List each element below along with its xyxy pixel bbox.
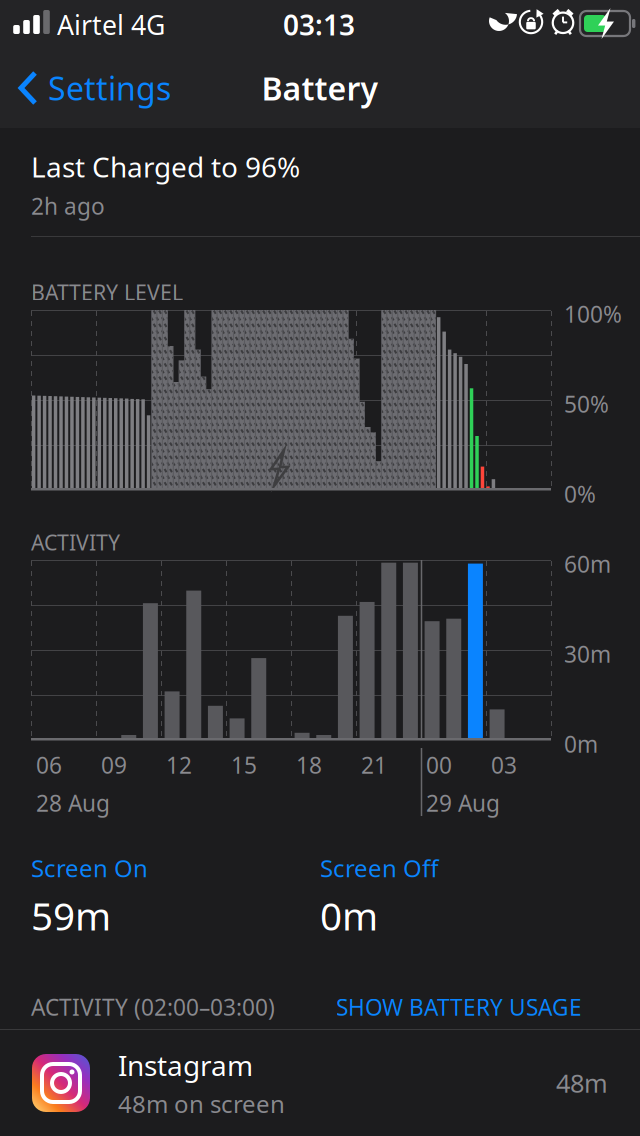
staticText: 48m (556, 1066, 608, 1100)
staticText: 2h ago (31, 191, 105, 221)
staticText: 18 (296, 750, 322, 780)
staticText: 21 (361, 750, 387, 780)
staticText: ACTIVITY (31, 528, 120, 556)
staticText: 59m (31, 890, 111, 941)
staticText: 12 (166, 750, 192, 780)
staticText: 48m on screen (118, 1088, 285, 1120)
staticText: 50% (564, 389, 609, 419)
staticText: Last Charged to 96% (31, 148, 300, 185)
staticText: 0m (320, 890, 378, 941)
staticText: 15 (231, 750, 257, 780)
staticText: 0m (564, 729, 598, 759)
staticText: 00 (426, 750, 452, 780)
staticText: Battery (261, 67, 378, 109)
staticText: SHOW BATTERY USAGE (336, 992, 582, 1022)
staticText: 29 Aug (426, 788, 500, 818)
button[interactable]: Instagram (0, 1030, 640, 1136)
staticText: BATTERY LEVEL (31, 278, 183, 306)
staticText: Screen Off (320, 852, 439, 884)
staticText: Airtel (57, 7, 124, 42)
staticText: 30m (564, 639, 611, 669)
staticText: 0% (564, 479, 596, 509)
staticText: 60m (564, 549, 611, 579)
button[interactable]: SHOW BATTERY USAGE (336, 992, 582, 1022)
staticText: 06 (36, 750, 62, 780)
staticText: 100% (564, 299, 622, 329)
button[interactable]: Settings (0, 57, 181, 119)
staticText: ACTIVITY (02:00–03:00) (31, 992, 275, 1022)
staticText: Screen On (31, 852, 148, 884)
staticText: Settings (48, 67, 171, 109)
staticText: 09 (101, 750, 127, 780)
button[interactable]: Screen Off (320, 852, 580, 941)
staticText: Instagram (118, 1046, 253, 1084)
staticText: 03:13 (283, 6, 355, 43)
staticText: 4G (131, 7, 165, 42)
staticText: 03 (491, 750, 517, 780)
staticText: 28 Aug (36, 788, 110, 818)
button[interactable]: Screen On (31, 852, 291, 941)
